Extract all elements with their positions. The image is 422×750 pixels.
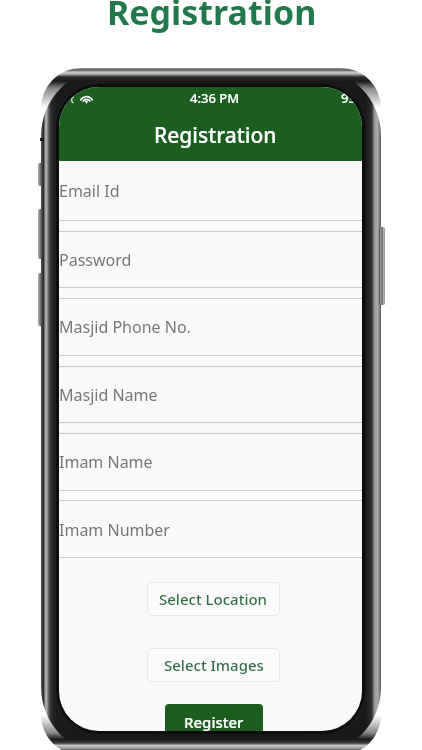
button[interactable]: Email Id [59,161,362,220]
staticText: Email Id [59,180,120,202]
staticText: Password [59,249,132,271]
button[interactable]: Imam Number [59,501,362,558]
staticText: Masjid Phone No. [59,316,191,338]
staticText: 4:36 PM [190,89,240,107]
other: Wi-Fi [79,93,94,103]
button[interactable]: Masjid Phone No. [59,299,362,355]
button[interactable]: Password [59,232,362,288]
staticText: Imam Name [59,451,153,473]
staticText: Masjid Name [59,384,158,406]
staticText: Register [184,712,244,731]
button[interactable]: Select Images [147,648,280,682]
staticText: Registration [107,0,317,35]
staticText: Registration [154,121,277,150]
staticText: Select Images [164,655,264,675]
button[interactable]: Select Location [147,582,280,616]
button[interactable]: Register [165,704,263,731]
staticText: 93 [341,89,356,107]
staticText: Select Location [159,589,268,609]
button[interactable]: Imam Name [59,434,362,490]
button[interactable]: Masjid Name [59,367,362,423]
staticText: Imam Number [59,519,170,541]
